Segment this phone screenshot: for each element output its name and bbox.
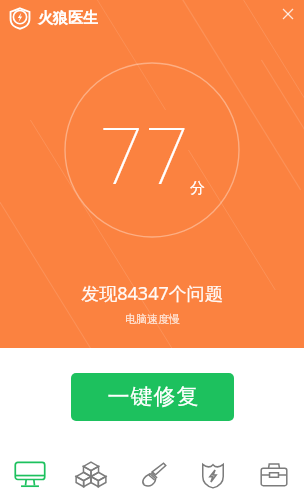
button[interactable]: Protect xyxy=(182,453,243,497)
button[interactable]: Clean xyxy=(121,453,182,497)
staticText: 电脑速度慢 xyxy=(125,312,180,326)
button[interactable]: Close xyxy=(276,2,300,26)
button[interactable]: Toolbox xyxy=(243,453,304,497)
button[interactable]: Software xyxy=(60,453,121,497)
button[interactable]: Monitor xyxy=(0,453,60,497)
staticText: 77 xyxy=(99,101,190,207)
staticText: 火狼医生 xyxy=(38,9,98,28)
button[interactable]: 一键修复 xyxy=(71,373,234,421)
other: Logo xyxy=(9,7,31,29)
staticText: 发现84347个问题 xyxy=(81,281,223,306)
staticText: 分 xyxy=(190,179,205,198)
staticText: 一键修复 xyxy=(107,383,199,411)
